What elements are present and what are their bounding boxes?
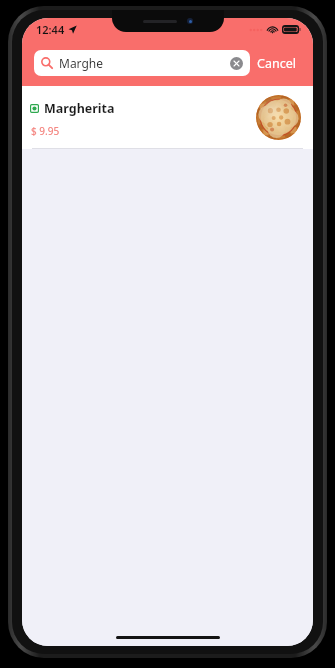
other: Vegetarian [30,104,39,113]
staticText: Cancel [257,55,296,72]
button[interactable]: Cancel [250,50,303,76]
button[interactable]: Clear search [230,57,243,70]
staticText: $ 9.95 [31,124,60,138]
button[interactable]: Vegetarian [22,86,313,149]
staticText: Marghe [59,55,230,71]
staticText: Margherita [44,100,115,117]
button[interactable]: Marghe [34,50,250,76]
staticText: 12:44 [36,22,65,37]
